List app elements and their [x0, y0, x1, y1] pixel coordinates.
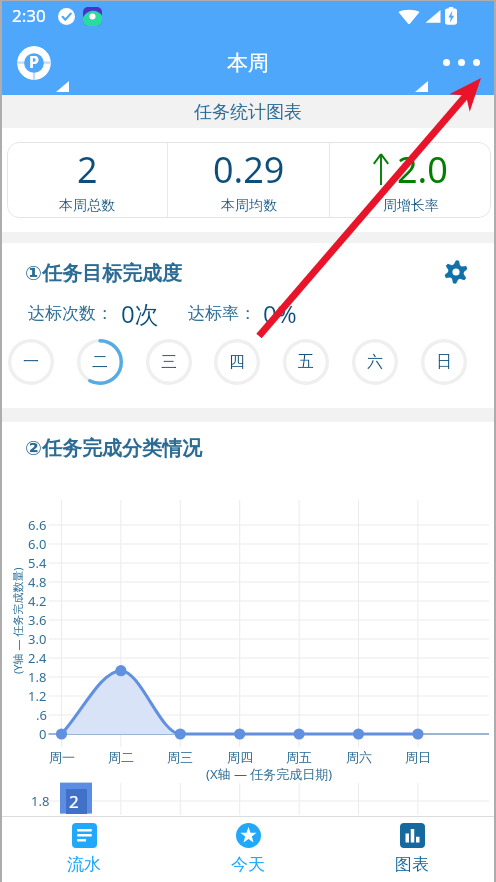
staticText: 0 — [39, 725, 47, 743]
staticText: 任务统计图表 — [194, 101, 302, 124]
staticText: 2.0 — [397, 145, 448, 194]
staticText: 2:30 — [12, 4, 46, 27]
button[interactable]: 日 — [421, 339, 467, 385]
staticText: 本周总数 — [59, 197, 115, 215]
staticText: 周二 — [108, 749, 134, 765]
staticText: 3.6 — [28, 611, 47, 629]
staticText: 周增长率 — [383, 197, 439, 215]
button[interactable]: More options — [443, 59, 480, 66]
button[interactable]: 二 — [77, 339, 123, 385]
staticText: 达标次数： — [28, 303, 113, 324]
staticText: 6.0 — [28, 535, 47, 553]
staticText: 周一 — [49, 749, 75, 765]
staticText: 图表 — [395, 854, 429, 875]
staticText: 0次 — [121, 297, 159, 330]
button[interactable]: 今天 — [166, 816, 330, 882]
staticText: 4.2 — [28, 592, 47, 610]
staticText: 2 — [69, 790, 79, 813]
staticText: 3.0 — [28, 630, 47, 648]
staticText: 2.4 — [28, 649, 47, 667]
staticText: 2 — [77, 145, 98, 194]
staticText: 周四 — [227, 749, 253, 765]
staticText: 5.4 — [28, 554, 47, 572]
staticText: 四 — [229, 352, 245, 372]
staticText: 周日 — [405, 749, 431, 765]
staticText: 1.2 — [28, 687, 47, 705]
button[interactable]: Settings — [443, 259, 469, 285]
button[interactable]: Profile — [17, 46, 51, 80]
staticText: 三 — [161, 352, 177, 372]
button[interactable]: 流水 — [2, 816, 166, 882]
staticText: 日 — [436, 352, 452, 372]
staticText: 周五 — [286, 749, 312, 765]
button[interactable]: 图表 — [330, 816, 494, 882]
button[interactable]: 2.0 — [330, 142, 491, 218]
button[interactable]: 四 — [214, 339, 260, 385]
staticText: 4.8 — [28, 573, 47, 591]
staticText: ①任务目标完成度 — [25, 261, 182, 286]
staticText: 本周均数 — [221, 197, 277, 215]
staticText: 五 — [298, 352, 314, 372]
staticText: 一 — [23, 352, 39, 372]
staticText: 1.8 — [28, 668, 47, 686]
button[interactable]: 0.29 — [168, 142, 329, 218]
staticText: ②任务完成分类情况 — [25, 436, 202, 461]
staticText: .6 — [36, 706, 47, 724]
staticText: 流水 — [67, 854, 101, 875]
button[interactable]: 三 — [146, 339, 192, 385]
staticText: 周六 — [346, 749, 372, 765]
staticText: 0% — [263, 297, 297, 330]
button[interactable]: 六 — [352, 339, 398, 385]
staticText: 二 — [92, 352, 108, 372]
staticText: 6.6 — [28, 516, 47, 534]
button[interactable]: 五 — [283, 339, 329, 385]
staticText: 0.29 — [213, 145, 285, 194]
staticText: 本周 — [227, 50, 269, 76]
staticText: 达标率： — [188, 303, 256, 324]
staticText: 周三 — [167, 749, 193, 765]
staticText: 六 — [367, 352, 383, 372]
staticText: P — [29, 51, 39, 73]
staticText: (Y轴 — 任务完成数量) — [10, 567, 25, 674]
staticText: 1.8 — [31, 792, 50, 810]
staticText: 今天 — [231, 854, 265, 875]
button[interactable]: 一 — [8, 339, 54, 385]
button[interactable]: 2 — [7, 142, 167, 218]
staticText: (X轴 — 任务完成日期) — [206, 765, 333, 783]
